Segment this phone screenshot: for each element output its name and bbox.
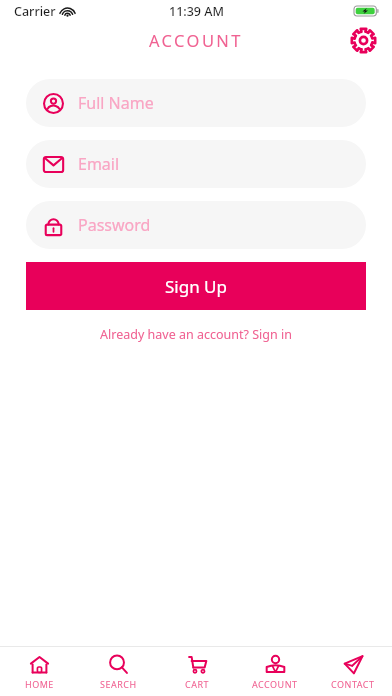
button[interactable]: Settings bbox=[344, 22, 382, 58]
button[interactable]: CONTACT bbox=[314, 647, 392, 696]
button[interactable]: CART bbox=[158, 647, 236, 696]
button[interactable]: Already have an account? Sign in bbox=[88, 322, 304, 347]
button[interactable]: SEARCH bbox=[79, 647, 158, 696]
staticText: CONTACT bbox=[331, 678, 375, 690]
staticText: Sign Up bbox=[165, 275, 227, 298]
button[interactable]: ACCOUNT bbox=[236, 647, 314, 696]
staticText: 11:39 AM bbox=[169, 3, 224, 20]
staticText: Full Name bbox=[78, 92, 154, 114]
button[interactable]: Full Name bbox=[26, 79, 366, 127]
staticText: HOME bbox=[25, 678, 54, 690]
staticText: SEARCH bbox=[100, 678, 137, 690]
button[interactable]: Sign Up bbox=[26, 262, 366, 310]
staticText: ACCOUNT bbox=[149, 29, 243, 51]
staticText: Carrier bbox=[14, 3, 56, 20]
staticText: Password bbox=[78, 214, 151, 236]
staticText: Email bbox=[78, 153, 120, 175]
button[interactable]: Password bbox=[26, 201, 366, 249]
staticText: CART bbox=[185, 678, 210, 690]
staticText: Already have an account? Sign in bbox=[100, 326, 292, 343]
staticText: ACCOUNT bbox=[252, 678, 298, 690]
button[interactable]: Email bbox=[26, 140, 366, 188]
button[interactable]: HOME bbox=[0, 647, 79, 696]
